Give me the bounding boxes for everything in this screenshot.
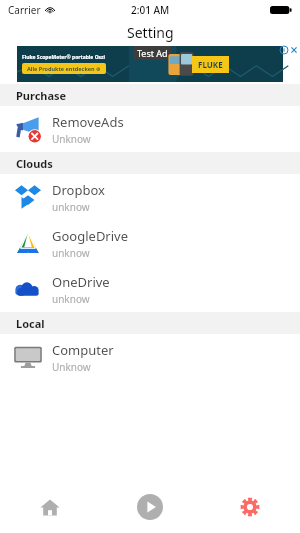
staticText: GoogleDrive	[52, 227, 129, 245]
button[interactable]: Play	[100, 480, 200, 533]
staticText: Dropbox	[52, 181, 105, 199]
staticText: unknow	[52, 246, 90, 260]
button[interactable]: GoogleDrive	[0, 220, 300, 266]
staticText: Computer	[52, 341, 114, 359]
staticText: OneDrive	[52, 273, 110, 291]
staticText: Unknow	[52, 132, 91, 146]
staticText: Carrier	[8, 3, 41, 17]
button[interactable]: RemoveAds	[0, 106, 300, 152]
staticText: Purchase	[16, 88, 67, 103]
staticText: 2:01 AM	[131, 3, 170, 17]
staticText: Unknow	[52, 360, 91, 374]
staticText: Clouds	[16, 156, 53, 171]
button[interactable]: Home	[0, 480, 100, 533]
staticText: Setting	[127, 23, 174, 42]
staticText: Fluke ScopeMeter® portable Oszi	[22, 54, 106, 61]
button[interactable]: Dropbox	[0, 174, 300, 220]
button[interactable]: Computer	[0, 334, 300, 380]
staticText: RemoveAds	[52, 113, 124, 131]
staticText: FLUKE	[198, 59, 223, 70]
button[interactable]: OneDrive	[0, 266, 300, 312]
staticText: Test Ad	[137, 47, 168, 59]
staticText: Alle Produkte entdecken ⊛	[27, 65, 101, 72]
staticText: Local	[16, 316, 45, 331]
staticText: unknow	[52, 292, 90, 306]
staticText: unknow	[52, 200, 90, 214]
button[interactable]: Settings	[200, 480, 300, 533]
